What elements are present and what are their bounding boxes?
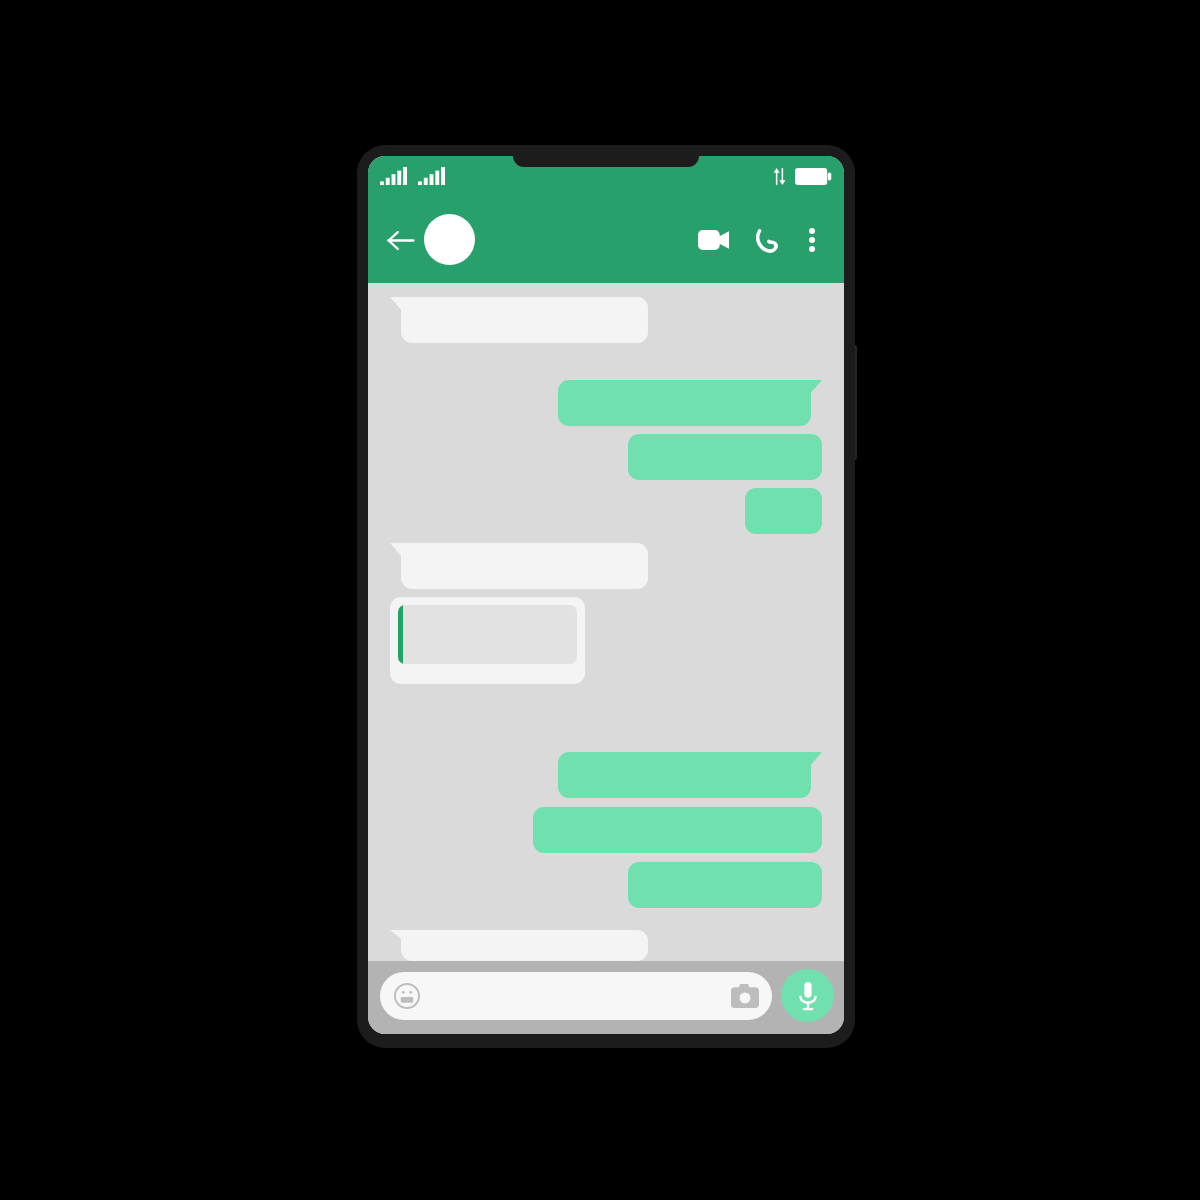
button[interactable] — [533, 807, 822, 853]
button[interactable]: Emoji — [392, 981, 422, 1011]
button[interactable] — [390, 930, 648, 961]
button[interactable] — [558, 752, 822, 798]
button[interactable]: Record voice message — [781, 969, 834, 1022]
button[interactable]: More options — [792, 220, 832, 260]
button[interactable] — [745, 488, 822, 534]
button[interactable]: Voice call — [743, 217, 789, 263]
button[interactable]: Video call — [690, 217, 736, 263]
button[interactable]: Back — [378, 218, 422, 262]
button[interactable] — [390, 597, 585, 684]
button[interactable] — [628, 862, 822, 908]
button[interactable]: Camera — [730, 981, 760, 1011]
button[interactable] — [390, 297, 648, 343]
button[interactable] — [628, 434, 822, 480]
button[interactable] — [390, 543, 648, 589]
button[interactable] — [558, 380, 822, 426]
button[interactable]: Emoji — [380, 972, 772, 1020]
button[interactable]: Contact avatar — [424, 214, 475, 265]
